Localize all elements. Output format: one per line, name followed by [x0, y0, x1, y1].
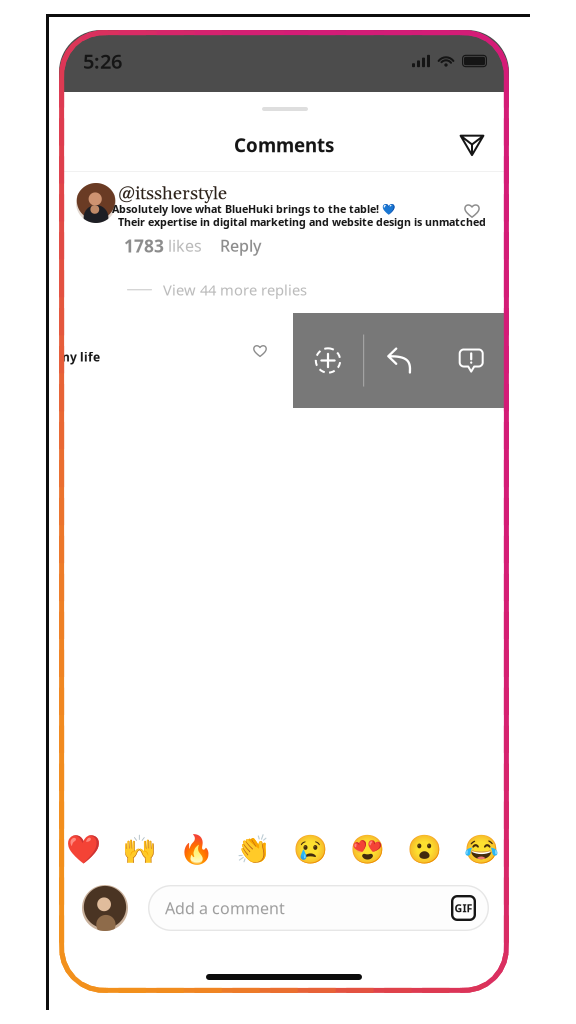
staticText: 😍: [350, 833, 385, 865]
button[interactable]: Like comment: [247, 338, 273, 363]
button[interactable]: 🔥: [172, 832, 222, 866]
button[interactable]: ❤️: [58, 832, 108, 866]
staticText: 1783: [124, 234, 164, 257]
button[interactable]: Reply: [364, 313, 435, 408]
button[interactable]: Like comment: [457, 196, 487, 225]
staticText: View 44 more replies: [163, 280, 307, 299]
button[interactable]: 😮: [399, 832, 449, 866]
button[interactable]: Add a GIF: [451, 895, 476, 921]
button[interactable]: Add to your story: [293, 313, 363, 408]
staticText: Add a comment: [165, 897, 285, 919]
staticText: 😂: [463, 833, 498, 865]
button[interactable]: Report: [435, 313, 507, 408]
staticText: 😮: [407, 833, 442, 865]
button[interactable]: 😍: [342, 832, 392, 866]
staticText: 🙌: [122, 833, 157, 865]
staticText: 😢: [293, 833, 328, 865]
staticText: Their expertise in digital marketing and…: [118, 215, 486, 229]
staticText: Reply: [220, 235, 261, 256]
staticText: ny life: [62, 349, 100, 365]
staticText: Absolutely love what BlueHuki brings to …: [112, 202, 395, 216]
button[interactable]: 😢: [285, 832, 335, 866]
button[interactable]: 🙌: [115, 832, 165, 866]
button[interactable]: Reply: [202, 232, 261, 259]
staticText: ❤️: [65, 833, 100, 865]
button[interactable]: View 44 more replies: [59, 274, 509, 305]
staticText: Comments: [234, 133, 334, 157]
button[interactable]: Share: [452, 126, 492, 163]
staticText: 🔥: [179, 833, 214, 865]
staticText: 5:26: [83, 48, 122, 74]
staticText: likes: [164, 235, 202, 256]
staticText: 👏: [236, 833, 271, 865]
button[interactable]: 👏: [229, 832, 279, 866]
button[interactable]: 😂: [456, 832, 506, 866]
staticText: GIF: [454, 901, 472, 915]
staticText: @itssherstyle: [118, 182, 227, 206]
